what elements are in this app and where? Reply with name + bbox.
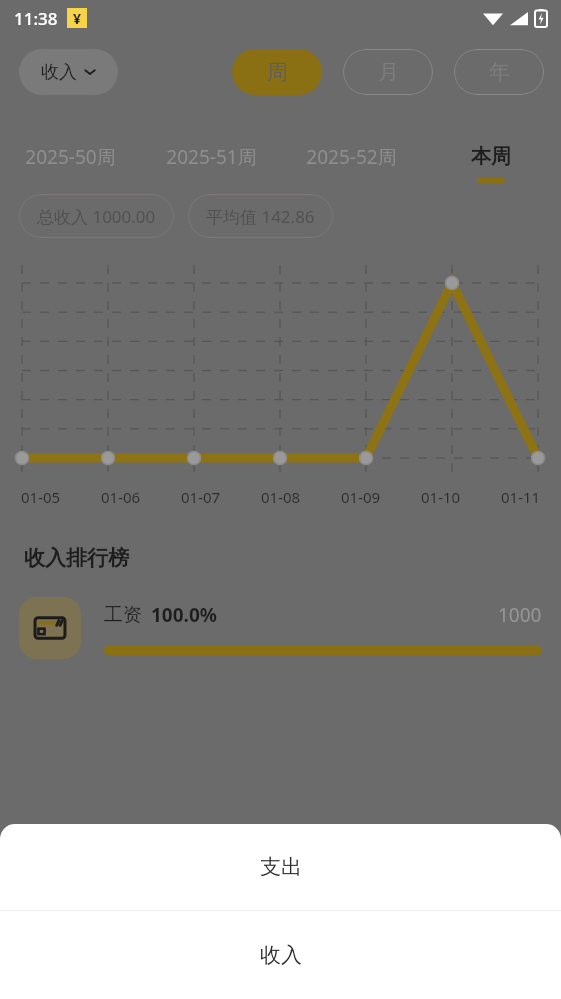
button[interactable]: 收入 bbox=[19, 49, 118, 95]
staticText: 2025-51周 bbox=[166, 144, 257, 170]
button[interactable]: 总收入 1000.00 bbox=[19, 194, 174, 238]
button[interactable]: 本周 bbox=[421, 134, 561, 190]
button[interactable]: 年 bbox=[454, 49, 544, 95]
staticText: 01-09 bbox=[341, 487, 381, 507]
button[interactable]: 工资分类 bbox=[0, 593, 561, 663]
staticText: 01-06 bbox=[101, 487, 141, 507]
button[interactable]: 2025-52周 bbox=[281, 134, 421, 190]
staticText: 11:38 bbox=[14, 7, 58, 30]
staticText: 本周 bbox=[471, 144, 511, 169]
staticText: 01-10 bbox=[421, 487, 461, 507]
staticText: 2025-50周 bbox=[25, 144, 116, 170]
staticText: ¥ bbox=[73, 9, 82, 28]
staticText: 总收入 1000.00 bbox=[37, 205, 156, 228]
button[interactable]: 月 bbox=[343, 49, 433, 95]
staticText: 周 bbox=[267, 59, 288, 85]
staticText: 2025-52周 bbox=[306, 144, 397, 170]
button[interactable]: 2025-50周 bbox=[0, 134, 141, 190]
other: 工资分类 bbox=[19, 597, 81, 659]
button[interactable]: 2025-51周 bbox=[141, 134, 281, 190]
button[interactable]: 收入 bbox=[0, 911, 561, 999]
staticText: 年 bbox=[489, 59, 510, 85]
staticText: 收入 bbox=[260, 942, 302, 968]
button[interactable]: 平均值 142.86 bbox=[188, 194, 333, 238]
staticText: 01-11 bbox=[501, 487, 541, 507]
button[interactable]: 支出 bbox=[0, 824, 561, 910]
button[interactable]: 周 bbox=[232, 49, 322, 95]
staticText: 01-07 bbox=[181, 487, 221, 507]
staticText: 收入排行榜 bbox=[24, 545, 129, 571]
staticText: 100.0% bbox=[151, 602, 217, 628]
staticText: 工资 bbox=[104, 603, 142, 627]
staticText: 01-05 bbox=[21, 487, 61, 507]
staticText: 月 bbox=[378, 59, 399, 85]
staticText: 支出 bbox=[260, 854, 302, 880]
staticText: 1000 bbox=[498, 602, 542, 628]
staticText: 01-08 bbox=[261, 487, 301, 507]
staticText: 收入 bbox=[41, 61, 77, 84]
staticText: 平均值 142.86 bbox=[206, 205, 315, 228]
